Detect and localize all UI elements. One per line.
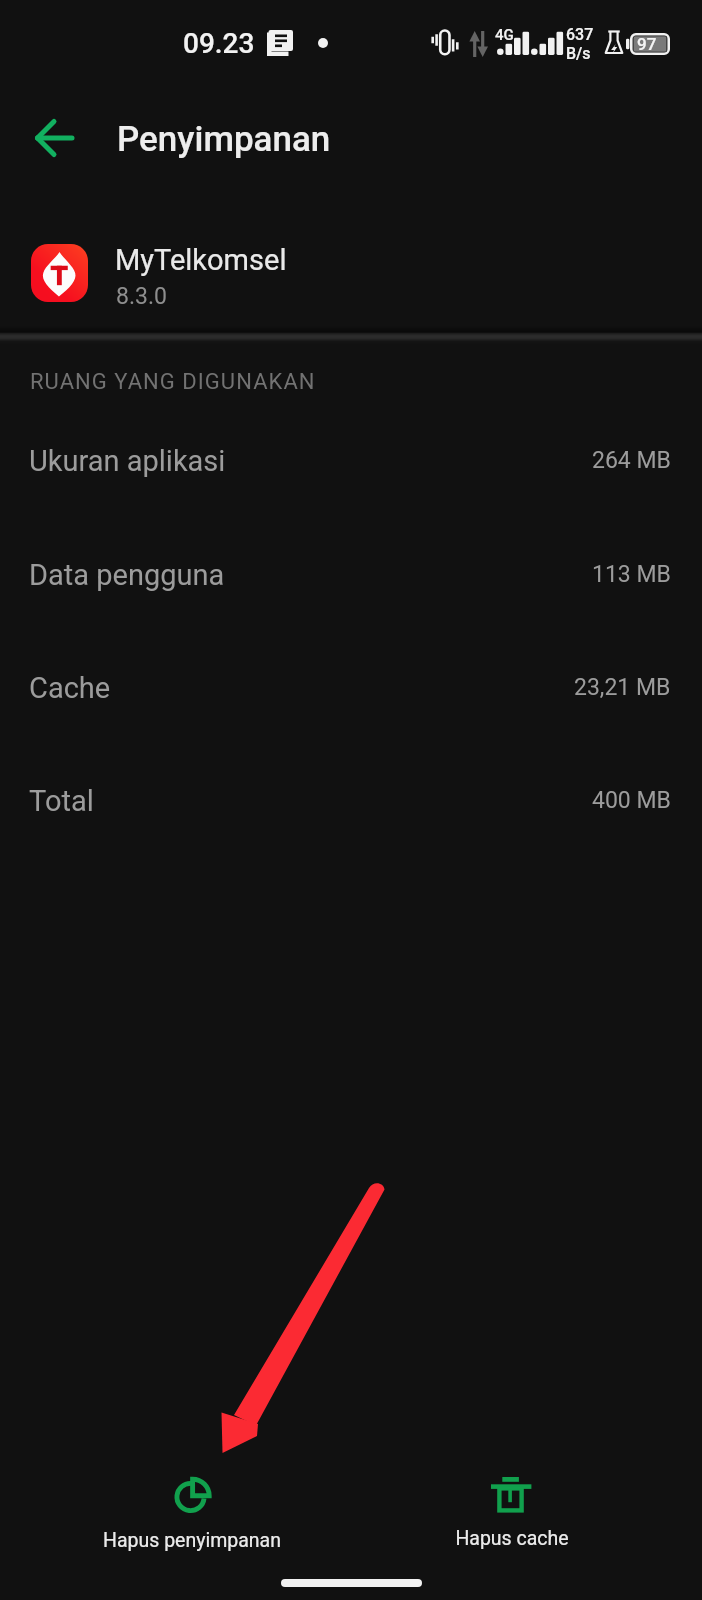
staticText: B/s [566, 44, 591, 63]
staticText: 113 MB [592, 561, 671, 588]
staticText: 400 MB [592, 787, 671, 814]
staticText: 4G [495, 26, 514, 44]
button[interactable]: Ukuran aplikasi [0, 407, 702, 520]
staticText: Hapus penyimpanan [103, 1529, 281, 1552]
staticText: 23,21 MB [574, 674, 671, 701]
staticText: Data pengguna [29, 558, 225, 592]
staticText: 09.23 [183, 27, 255, 60]
button[interactable]: Cache [0, 634, 702, 747]
staticText: Total [29, 784, 94, 818]
staticText: MyTelkomsel [115, 243, 287, 277]
staticText: Penyimpanan [117, 119, 331, 160]
staticText: 264 MB [592, 447, 671, 474]
button[interactable]: Data pengguna [0, 521, 702, 634]
button[interactable]: Back [23, 113, 85, 163]
staticText: 97 [637, 34, 657, 54]
button[interactable]: Total [0, 747, 702, 860]
staticText: Hapus cache [455, 1527, 569, 1550]
staticText: 8.3.0 [116, 283, 167, 310]
button[interactable]: Hapus cache [440, 1477, 583, 1550]
staticText: 637 [566, 25, 594, 44]
staticText: Cache [29, 671, 111, 705]
staticText: RUANG YANG DIGUNAKAN [30, 369, 316, 395]
staticText: Ukuran aplikasi [29, 444, 226, 478]
button[interactable]: Hapus penyimpanan [92, 1477, 291, 1552]
